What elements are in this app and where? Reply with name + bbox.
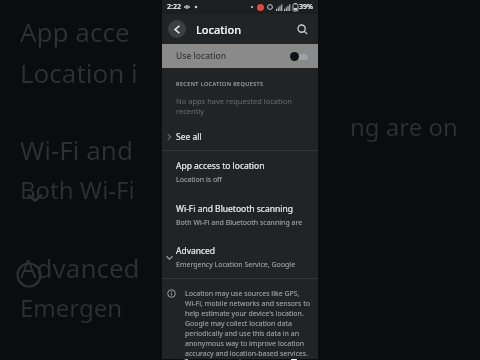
staticText: Wi-Fi and bbox=[20, 132, 133, 167]
button[interactable]: Use location bbox=[162, 44, 318, 68]
button[interactable]: App access to location bbox=[162, 151, 318, 194]
staticText: Wi-Fi and Bluetooth scanning bbox=[176, 203, 293, 215]
staticText: Emergen bbox=[20, 291, 123, 324]
staticText: Advanced bbox=[176, 245, 216, 257]
staticText: 39% bbox=[299, 2, 313, 12]
staticText: ng are on bbox=[350, 110, 458, 143]
button[interactable]: Home bbox=[230, 359, 250, 360]
staticText: Advanced bbox=[20, 250, 140, 285]
button[interactable]: See all bbox=[162, 127, 318, 147]
button[interactable]: Wi-Fi and Bluetooth scanning bbox=[162, 194, 318, 237]
staticText: Location may use sources like GPS, Wi-Fi… bbox=[185, 289, 310, 359]
button[interactable]: Recent apps bbox=[284, 359, 304, 360]
button[interactable]: Back bbox=[168, 20, 186, 38]
staticText: 2:22 bbox=[167, 2, 181, 12]
staticText: Location bbox=[196, 22, 242, 37]
staticText: RECENT LOCATION REQUESTS bbox=[176, 80, 264, 87]
staticText: Location is off bbox=[176, 175, 222, 185]
staticText: Location i bbox=[20, 55, 138, 90]
staticText: Both Wi-Fi bbox=[20, 173, 135, 206]
staticText: Use location bbox=[176, 50, 227, 62]
button[interactable]: Search bbox=[292, 19, 312, 39]
staticText: App access to location bbox=[176, 160, 265, 172]
staticText: App acce bbox=[20, 14, 130, 49]
button[interactable]: Back bbox=[176, 359, 196, 360]
staticText: No apps have requested location recently bbox=[176, 96, 318, 116]
staticText: Both Wi-Fi and Bluetooth scanning are on bbox=[176, 218, 310, 228]
staticText: Emergency Location Service, Google Locat… bbox=[176, 260, 312, 270]
staticText: See all bbox=[176, 131, 202, 143]
button[interactable]: Advanced bbox=[162, 237, 318, 278]
